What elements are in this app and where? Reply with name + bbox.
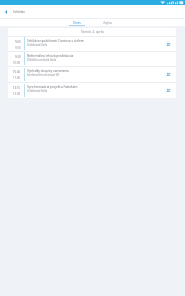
staticText: Štvrtok, 4. apríla: [81, 30, 104, 34]
staticText: Výsledky skupiny zamerania: [27, 69, 69, 73]
button[interactable]: Attendees: [163, 39, 173, 49]
staticText: Schôdza spoločnosti Contoso s cieľom: [27, 39, 84, 43]
staticText: 10:45: [13, 70, 21, 74]
staticText: Schôdzová Sieňa: [27, 89, 48, 93]
button[interactable]: Attendees: [163, 69, 173, 79]
staticText: 9:00: [15, 40, 21, 44]
staticText: 13:15: [13, 86, 21, 90]
staticText: 10:00: [13, 61, 21, 65]
staticText: 13:30: [13, 92, 21, 96]
button[interactable]: Attendees: [163, 85, 173, 95]
button[interactable]: 9:30: [8, 51, 176, 66]
staticText: Dnes: [73, 21, 81, 25]
staticText: Dôležité umelecká škola: [27, 58, 57, 62]
staticText: 9:30: [15, 46, 21, 50]
staticText: Synchronizácia projektu Fabrikam: [27, 85, 78, 89]
staticText: Konferenčná miestnosť 68: [27, 73, 59, 77]
staticText: 9:30: [15, 55, 21, 59]
button[interactable]: 10:45: [8, 66, 176, 82]
button[interactable]: 13:15: [8, 82, 176, 98]
button[interactable]: 9:00: [8, 36, 176, 51]
staticText: Neformálna trhová prediskusia: [27, 54, 74, 58]
button[interactable]: Dnes: [62, 19, 92, 26]
staticText: 11:00: [13, 76, 21, 80]
staticText: Schôdze: [13, 10, 26, 14]
button[interactable]: Back: [0, 6, 12, 18]
staticText: Zajtra: [103, 21, 112, 25]
staticText: Schôdzová Sieňa: [27, 43, 48, 47]
button[interactable]: Zajtra: [92, 19, 122, 26]
